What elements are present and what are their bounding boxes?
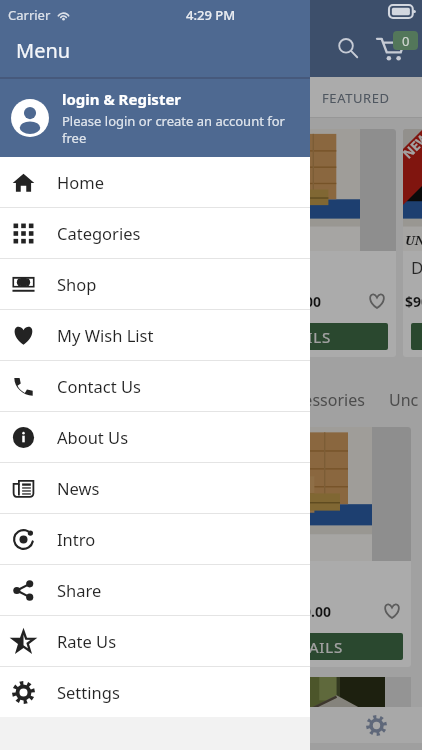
staticText: Desk: [210, 256, 250, 279]
button[interactable]: My Wish List: [0, 310, 310, 360]
button[interactable]: UNIT $150/mo: [403, 129, 422, 357]
staticText: Home: [57, 171, 104, 193]
staticText: Share: [57, 579, 102, 601]
staticText: $90.00: [405, 292, 422, 311]
staticText: $90.00: [287, 602, 331, 621]
staticText: News: [57, 477, 100, 499]
staticText: Categories: [57, 222, 141, 244]
staticText: Unc: [389, 389, 419, 411]
button[interactable]: Search: [327, 27, 369, 69]
staticText: Carrier: [8, 6, 51, 24]
button[interactable]: Contact Us: [0, 361, 310, 411]
button[interactable]: Settings: [0, 667, 310, 717]
button[interactable]: Shop: [0, 259, 310, 309]
staticText: DETAILS: [268, 327, 331, 347]
staticText: Contact Us: [57, 375, 141, 397]
button[interactable]: News: [0, 463, 310, 513]
button[interactable]: UNIT $150/mo: [202, 129, 396, 357]
button[interactable]: Add to wish list: [381, 600, 403, 622]
staticText: Intro: [57, 528, 96, 550]
button[interactable]: Categories: [0, 208, 310, 258]
button[interactable]: Shopping cart: [369, 27, 411, 69]
button[interactable]: Settings: [330, 707, 422, 743]
button[interactable]: Intro: [0, 514, 310, 564]
staticText: login & Register: [62, 89, 182, 109]
staticText: 0: [402, 32, 410, 50]
button[interactable]: DETAILS: [411, 323, 422, 350]
staticText: Settings: [57, 681, 120, 703]
button[interactable]: DETAILS: [220, 633, 403, 660]
staticText: UNIT $150/mo: [405, 231, 422, 249]
staticText: 4:29 PM: [186, 6, 236, 24]
staticText: $90.00: [277, 292, 321, 311]
staticText: Desk: [411, 256, 422, 279]
button[interactable]: About Us: [0, 412, 310, 462]
staticText: My Wish List: [57, 324, 154, 346]
staticText: DETAILS: [280, 637, 343, 657]
button[interactable]: login & Register: [0, 79, 310, 157]
staticText: NEW: [403, 129, 422, 162]
staticText: About Us: [57, 426, 129, 448]
button[interactable]: Add to wish list: [366, 290, 388, 312]
button[interactable]: Cart count: [393, 31, 418, 50]
button[interactable]: UNIT $150/mo: [212, 427, 411, 667]
button[interactable]: Share: [0, 565, 310, 615]
staticText: FEATURED: [322, 89, 390, 107]
button[interactable]: Home: [0, 157, 310, 207]
staticText: ccessories: [288, 389, 365, 411]
staticText: Shop: [57, 273, 97, 295]
button[interactable]: DETAILS: [210, 323, 388, 350]
staticText: Please login or create an account for fr…: [62, 112, 298, 147]
staticText: Menu: [16, 37, 71, 64]
button[interactable]: Rate Us: [0, 616, 310, 666]
staticText: Rate Us: [57, 630, 117, 652]
